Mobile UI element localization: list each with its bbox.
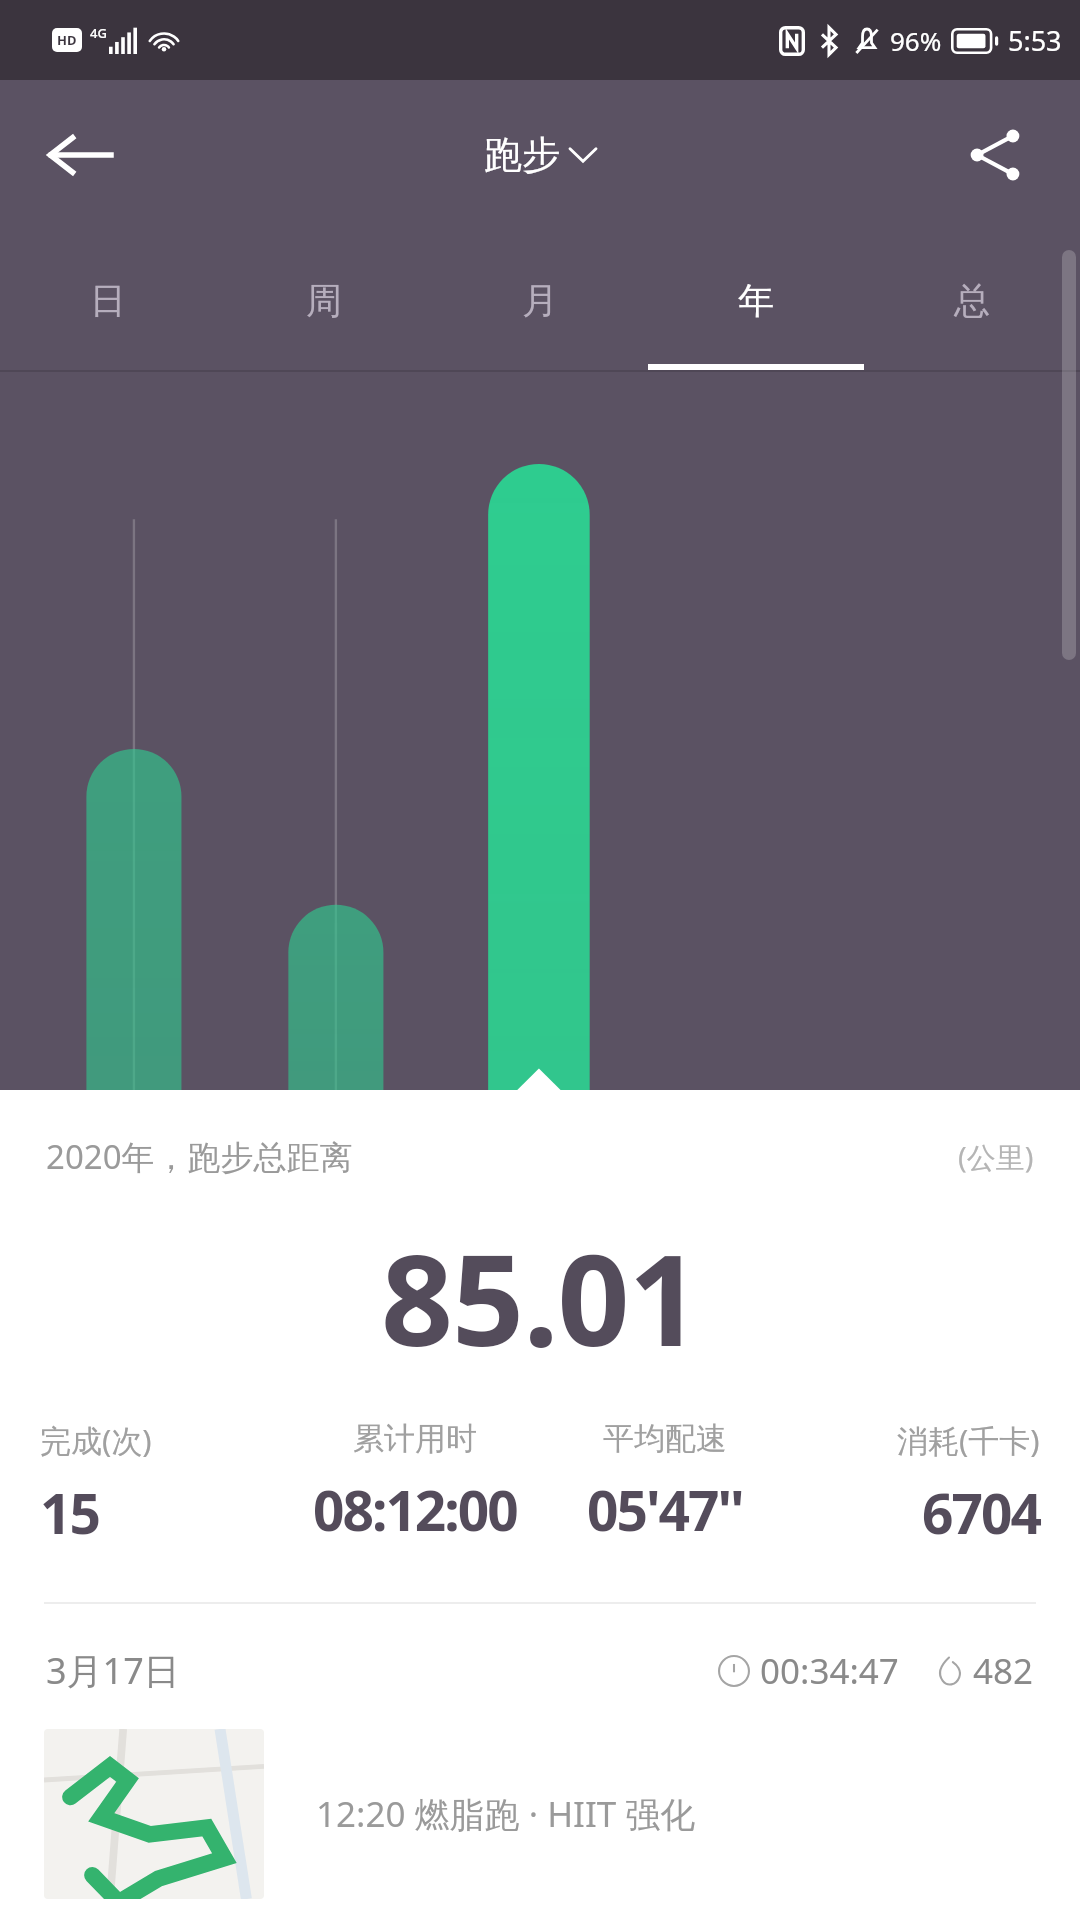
staticText: 96% xyxy=(890,23,942,58)
staticText: 完成(次) xyxy=(40,1419,152,1461)
button[interactable]: 3月17日 xyxy=(0,1646,1080,1695)
staticText: 平均配速 xyxy=(603,1419,727,1458)
staticText: 周 xyxy=(306,278,342,323)
button[interactable]: 跑步 xyxy=(484,131,596,179)
staticText: HD xyxy=(57,31,77,49)
button[interactable]: 年 xyxy=(648,230,864,370)
staticText: 482 xyxy=(973,1647,1034,1695)
button[interactable]: 月 xyxy=(432,230,648,370)
staticText: 2020年，跑步总距离 xyxy=(46,1134,353,1179)
staticText: 6704 xyxy=(922,1475,1040,1550)
button[interactable]: 日 xyxy=(0,230,216,370)
staticText: 4G xyxy=(90,24,107,42)
staticText: 05'47'' xyxy=(587,1472,743,1547)
staticText: 85.01 xyxy=(381,1211,700,1383)
staticText: 总 xyxy=(954,278,990,323)
staticText: 月 xyxy=(522,278,558,323)
button[interactable]: 周 xyxy=(216,230,432,370)
staticText: 5:53 xyxy=(1008,22,1062,59)
button[interactable]: 12:20 燃脂跑 · HIIT 强化 xyxy=(0,1729,1080,1899)
staticText: 12:20 燃脂跑 · HIIT 强化 xyxy=(316,1790,696,1838)
staticText: (公里) xyxy=(958,1137,1034,1177)
button[interactable]: Share xyxy=(950,110,1040,200)
staticText: 累计用时 xyxy=(353,1419,477,1458)
staticText: 3月17日 xyxy=(46,1646,180,1695)
staticText: 08:12:00 xyxy=(313,1472,517,1547)
button[interactable]: 总 xyxy=(864,230,1080,370)
staticText: 年 xyxy=(738,278,774,323)
staticText: 15 xyxy=(40,1475,99,1550)
staticText: 日 xyxy=(90,278,126,323)
button[interactable]: Back xyxy=(32,107,128,203)
staticText: 消耗(千卡) xyxy=(897,1419,1040,1461)
staticText: 跑步 xyxy=(484,131,560,179)
staticText: 00:34:47 xyxy=(760,1647,899,1695)
